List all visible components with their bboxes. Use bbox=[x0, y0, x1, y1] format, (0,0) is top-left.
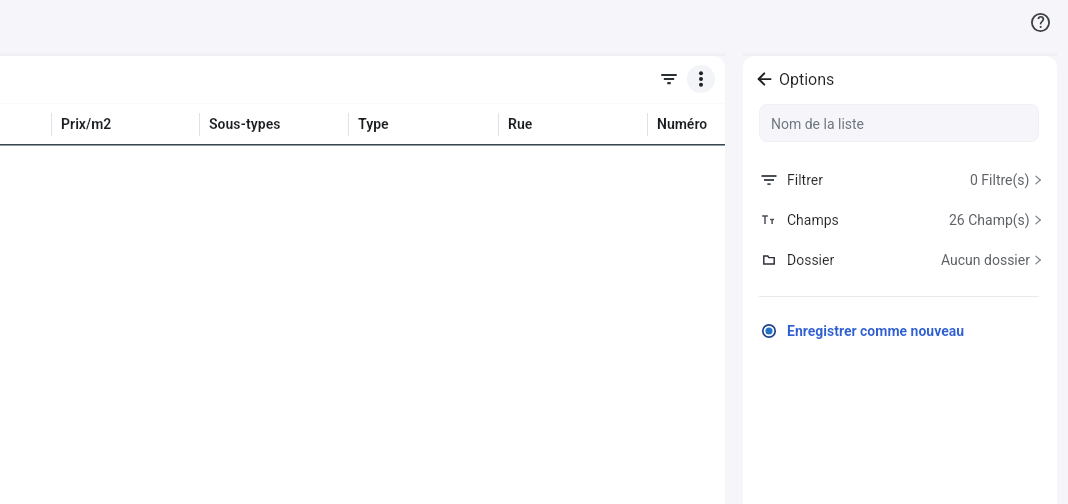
staticText: Type bbox=[358, 116, 389, 132]
staticText: Numéro bbox=[657, 116, 708, 132]
button[interactable]: More options bbox=[687, 65, 715, 93]
staticText: Champs bbox=[787, 212, 839, 228]
staticText: Sous-types bbox=[209, 116, 281, 132]
button[interactable]: Enregistrer comme nouveau bbox=[743, 314, 1057, 348]
staticText: Enregistrer comme nouveau bbox=[787, 323, 965, 339]
button[interactable]: Filtrer bbox=[743, 160, 1057, 200]
staticText: Prix/m2 bbox=[61, 116, 112, 132]
button[interactable]: Numéro bbox=[647, 104, 722, 144]
button[interactable]: Type bbox=[348, 104, 498, 144]
staticText: ? bbox=[1037, 13, 1045, 32]
button[interactable]: Champs bbox=[743, 200, 1057, 240]
staticText: 0 Filtre(s) bbox=[970, 172, 1030, 188]
button[interactable]: Help bbox=[1022, 4, 1058, 40]
staticText: 26 Champ(s) bbox=[949, 212, 1030, 228]
button[interactable]: Rue bbox=[498, 104, 647, 144]
button[interactable]: Filter bbox=[653, 63, 685, 95]
button[interactable]: Nom de la liste bbox=[759, 104, 1039, 142]
staticText: Rue bbox=[508, 116, 533, 132]
staticText: Aucun dossier bbox=[941, 252, 1030, 268]
button[interactable]: Back bbox=[749, 63, 781, 95]
button[interactable]: Sous-types bbox=[199, 104, 348, 144]
button[interactable]: Prix/m2 bbox=[51, 104, 199, 144]
staticText: Filtrer bbox=[787, 172, 823, 188]
staticText: Dossier bbox=[787, 252, 835, 268]
button[interactable]: Dossier bbox=[743, 240, 1057, 280]
staticText: Options bbox=[779, 70, 835, 89]
staticText: Nom de la liste bbox=[771, 116, 865, 132]
